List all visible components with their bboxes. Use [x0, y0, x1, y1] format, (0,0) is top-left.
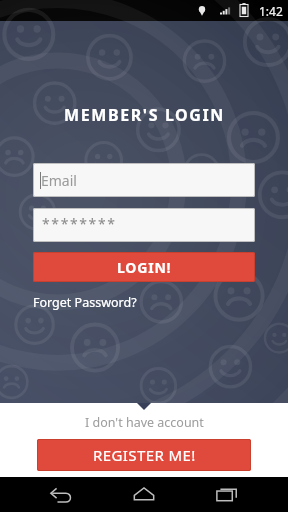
staticText: Forget Password? [33, 294, 137, 311]
staticText: 1:42 [259, 3, 283, 19]
staticText: Email [41, 171, 77, 190]
button[interactable]: ******** [33, 208, 255, 242]
button[interactable]: REGISTER ME! [37, 439, 251, 471]
button[interactable]: Home [122, 477, 166, 512]
button[interactable]: Back [39, 477, 83, 512]
staticText: I don't have account [85, 414, 204, 431]
button[interactable]: Email [33, 163, 255, 197]
staticText: ******** [42, 214, 117, 233]
button[interactable]: LOGIN! [33, 252, 255, 282]
staticText: LOGIN! [117, 258, 172, 277]
button[interactable]: Forget Password? [33, 294, 137, 311]
staticText: MEMBER'S LOGIN [64, 104, 225, 126]
staticText: REGISTER ME! [93, 445, 196, 465]
button[interactable]: Recent apps [205, 477, 249, 512]
